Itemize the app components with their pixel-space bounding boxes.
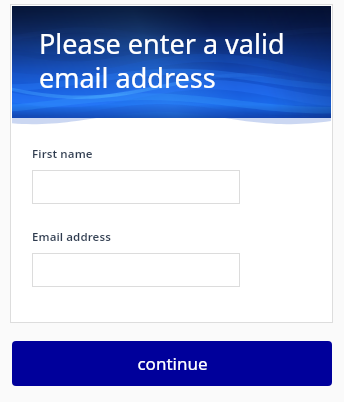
button[interactable] [32,253,240,287]
staticText: Email address [32,229,111,245]
button[interactable]: continue [12,341,332,386]
staticText: continue [137,352,208,375]
button[interactable] [32,170,240,204]
staticText: Please enter a valid email address [39,25,285,96]
staticText: First name [32,146,93,162]
